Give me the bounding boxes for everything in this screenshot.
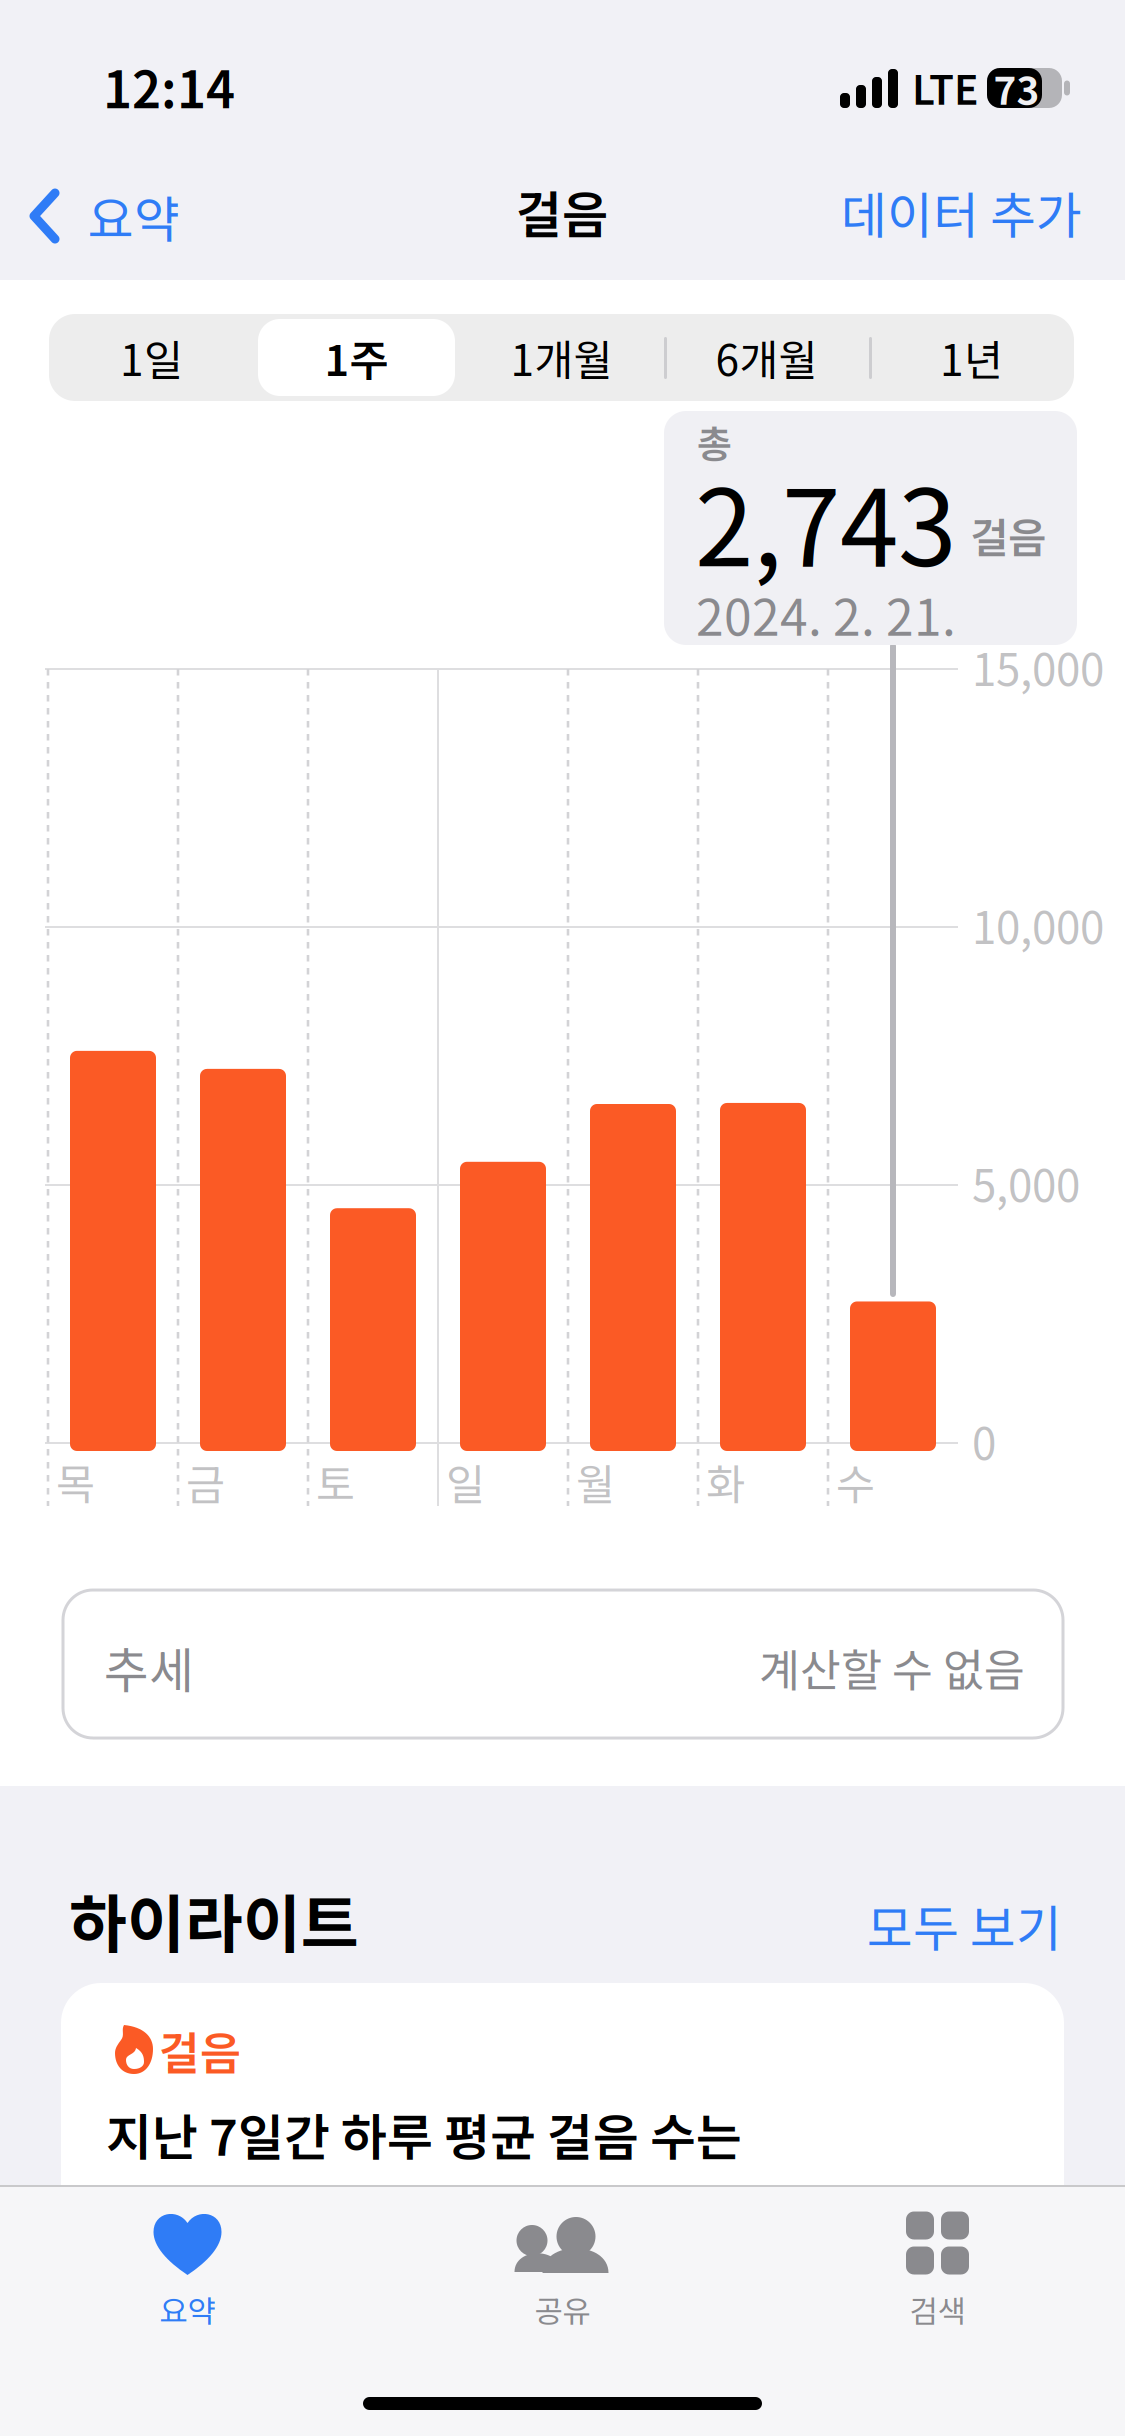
staticText: 1년 [940,327,1003,388]
staticText: 월 [576,1451,615,1512]
button[interactable]: 6개월 [664,314,869,401]
staticText: 요약 [88,180,180,252]
staticText: 걸음 [516,175,608,248]
staticText: 지난 7일간 하루 평균 걸음 수는 [106,2098,742,2170]
button[interactable]: 걸음 [61,1983,1064,2263]
staticText: 하이라이트 [69,1874,359,1965]
button[interactable]: 공유 [375,2187,750,2331]
button[interactable]: 검색 [750,2187,1125,2331]
button[interactable]: 추세 [63,1590,1063,1738]
staticText: 15,000 [972,635,1104,699]
staticText: 총 [697,414,732,469]
staticText: 일 [446,1451,485,1512]
staticText: 걸음 [159,2018,241,2082]
staticText: 계산할 수 없음 [759,1635,1025,1699]
staticText: 73 [993,60,1039,116]
staticText: 6개월 [715,327,817,388]
staticText: 목 [56,1451,95,1512]
staticText: 1일 [120,327,183,388]
staticText: 데이터 추가 [841,176,1082,248]
staticText: 0 [972,1409,996,1473]
staticText: 토 [316,1451,355,1512]
staticText: 추세 [104,1632,194,1702]
button[interactable]: 모두 보기 [859,1877,1070,1973]
button[interactable]: 1년 [869,314,1074,401]
staticText: 요약 [159,2287,215,2331]
button[interactable]: 요약 [0,2187,375,2331]
staticText: 12:14 [103,50,235,123]
button[interactable]: 1일 [49,314,254,401]
staticText: 화 [706,1451,745,1512]
staticText: 2024. 2. 21. [696,578,956,650]
staticText: 공유 [534,2287,590,2331]
staticText: 1주 [324,327,388,388]
staticText: 모두 보기 [867,1889,1062,1961]
staticText: 2,743 [695,444,956,597]
staticText: LTE [912,58,979,116]
staticText: 5,000 [972,1151,1080,1215]
staticText: 수 [836,1451,875,1512]
staticText: 1개월 [510,327,612,388]
button[interactable]: 데이터 추가 [821,152,1102,272]
button[interactable]: 1개월 [459,314,664,401]
staticText: 걸음 [970,505,1046,565]
staticText: 검색 [909,2287,965,2331]
button[interactable]: 요약 [0,158,200,274]
staticText: 금 [186,1451,225,1512]
staticText: 10,000 [972,893,1104,957]
button[interactable]: 1주 [254,314,459,401]
